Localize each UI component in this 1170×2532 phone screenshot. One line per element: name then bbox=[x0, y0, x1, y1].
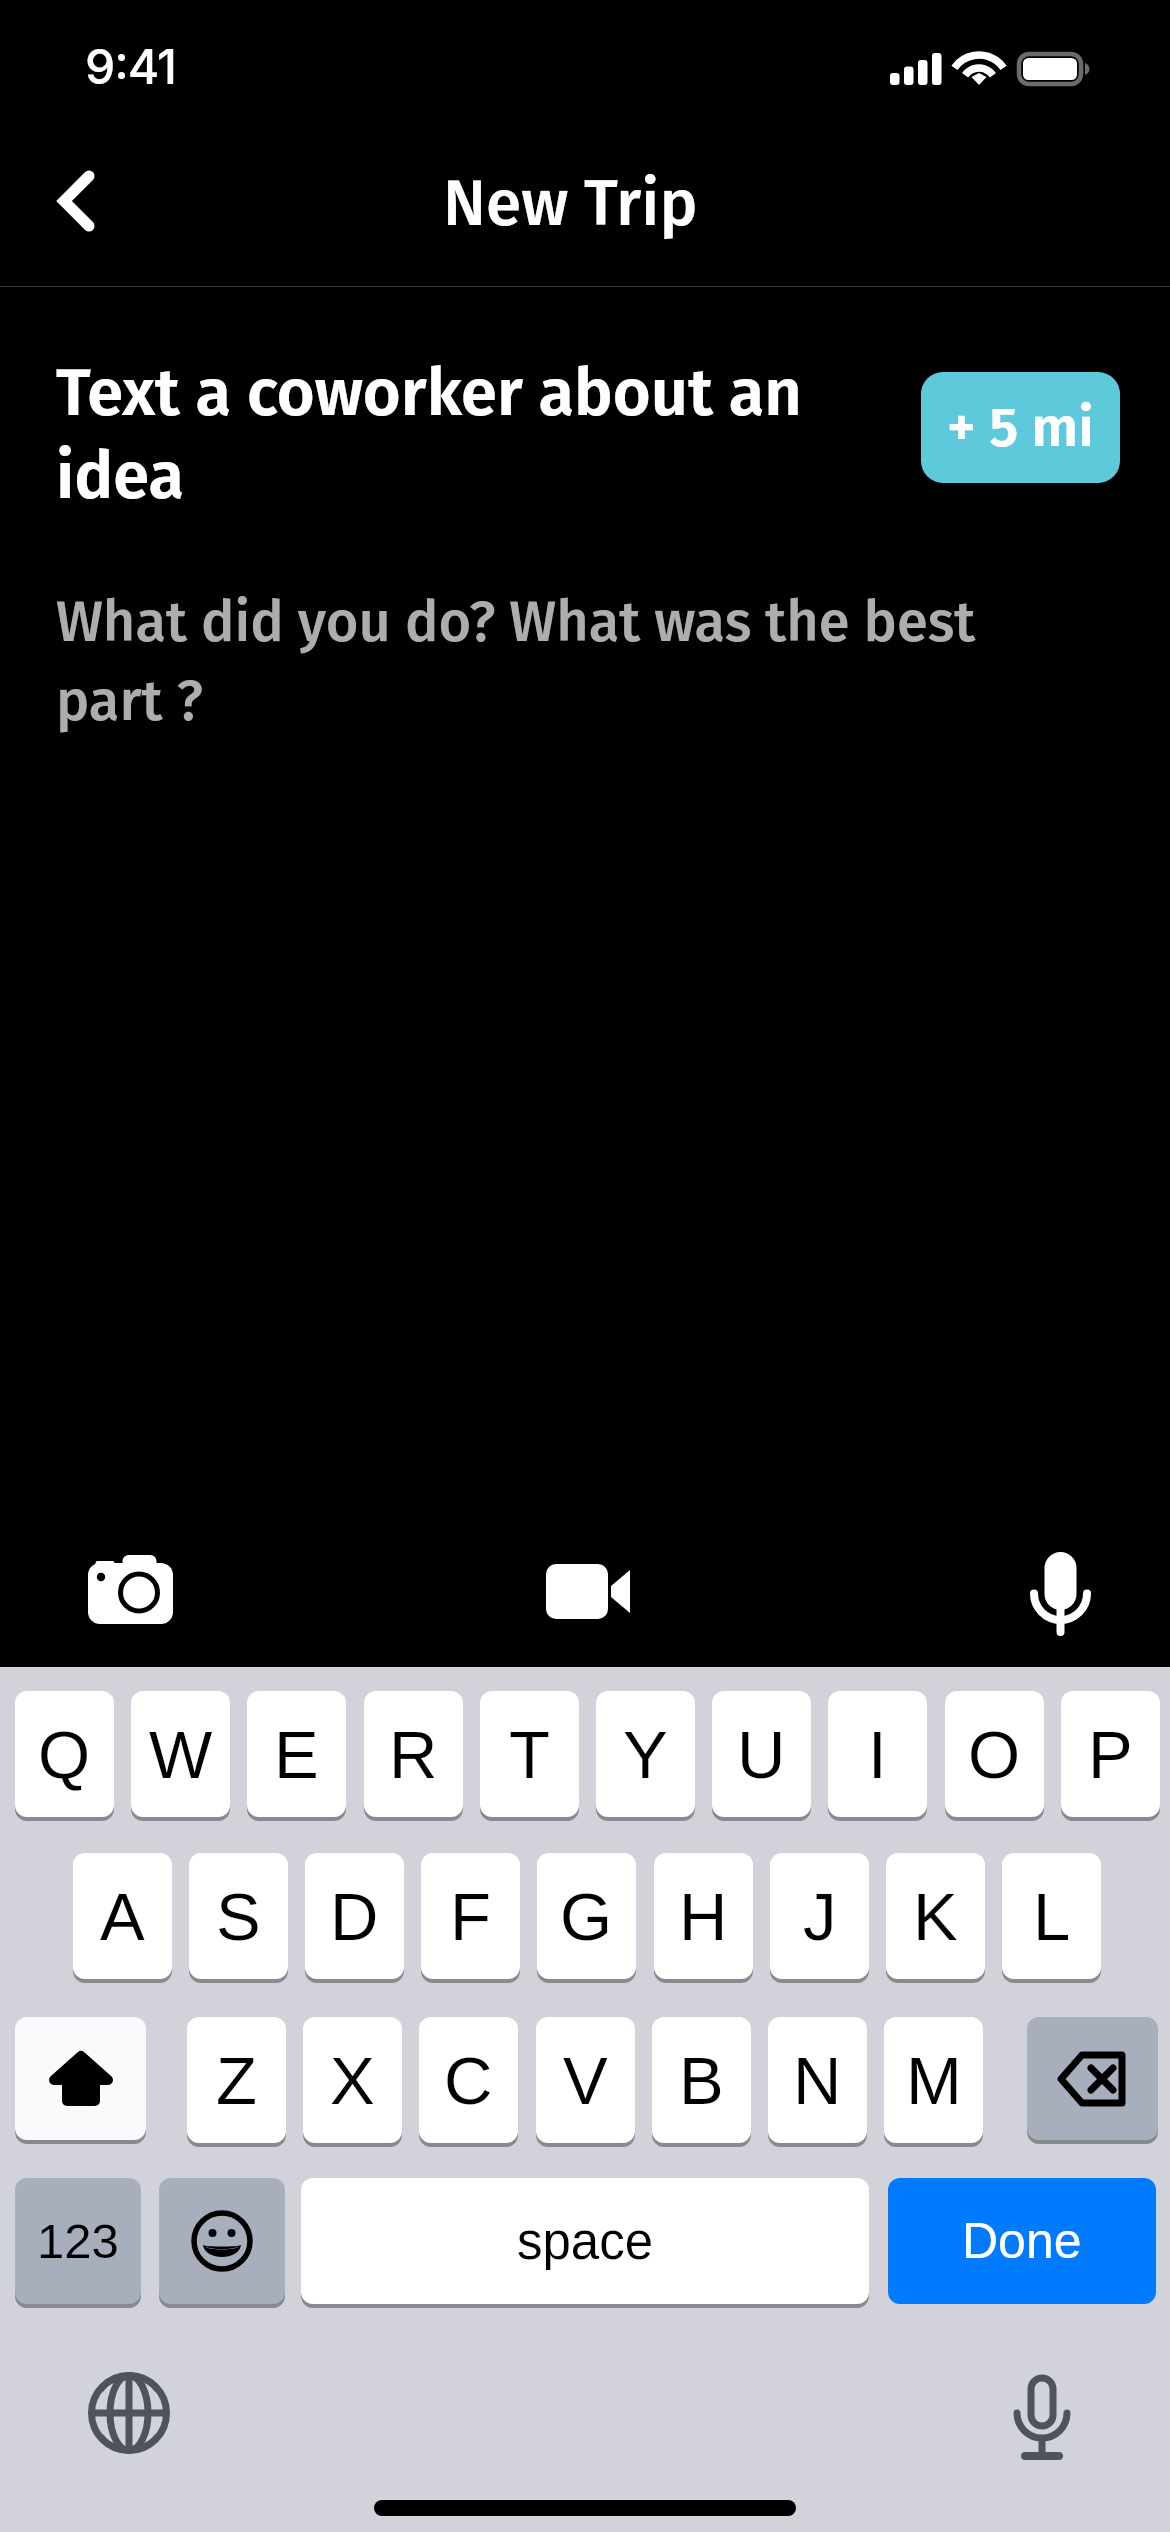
button[interactable]: Change keyboard bbox=[69, 2353, 189, 2473]
staticText: A bbox=[100, 1879, 145, 1954]
staticText: E bbox=[274, 1717, 319, 1792]
button[interactable] bbox=[15, 2017, 146, 2140]
button[interactable]: G bbox=[537, 1853, 636, 1979]
button[interactable] bbox=[1027, 2017, 1158, 2140]
button[interactable]: Done bbox=[888, 2178, 1156, 2304]
staticText: U bbox=[737, 1717, 786, 1792]
staticText: N bbox=[793, 2043, 842, 2118]
button[interactable]: P bbox=[1061, 1691, 1160, 1817]
button[interactable]: L bbox=[1002, 1853, 1101, 1979]
button[interactable]: + 5 mi bbox=[921, 372, 1120, 483]
staticText: M bbox=[906, 2043, 962, 2118]
button[interactable]: D bbox=[305, 1853, 404, 1979]
button[interactable]: A bbox=[73, 1853, 172, 1979]
staticText: New Trip bbox=[443, 165, 698, 242]
button[interactable]: V bbox=[536, 2017, 635, 2143]
button[interactable]: I bbox=[828, 1691, 927, 1817]
staticText: C bbox=[444, 2043, 493, 2118]
button[interactable]: 123 bbox=[15, 2178, 141, 2304]
staticText: 9:41 bbox=[85, 37, 176, 95]
button[interactable]: Q bbox=[15, 1691, 114, 1817]
button[interactable]: U bbox=[712, 1691, 811, 1817]
staticText: I bbox=[868, 1717, 887, 1792]
staticText: Z bbox=[216, 2043, 257, 2118]
button[interactable]: F bbox=[421, 1853, 520, 1979]
staticText: W bbox=[149, 1717, 213, 1792]
staticText: D bbox=[330, 1879, 379, 1954]
button[interactable]: X bbox=[303, 2017, 402, 2143]
staticText: 123 bbox=[37, 2214, 119, 2269]
button[interactable]: space bbox=[301, 2178, 869, 2304]
button[interactable]: M bbox=[884, 2017, 983, 2143]
button[interactable]: T bbox=[480, 1691, 579, 1817]
button[interactable]: K bbox=[886, 1853, 985, 1979]
staticText: O bbox=[968, 1717, 1021, 1792]
staticText: G bbox=[560, 1879, 613, 1954]
staticText: F bbox=[450, 1879, 491, 1954]
staticText: P bbox=[1088, 1717, 1133, 1792]
staticText: What did you do? What was the best part … bbox=[56, 589, 1016, 735]
button[interactable]: R bbox=[364, 1691, 463, 1817]
button[interactable]: E bbox=[247, 1691, 346, 1817]
staticText: S bbox=[216, 1879, 261, 1954]
button[interactable]: Video bbox=[526, 1544, 666, 1684]
button[interactable]: Z bbox=[187, 2017, 286, 2143]
staticText: space bbox=[517, 2213, 654, 2270]
staticText: H bbox=[679, 1879, 728, 1954]
staticText: V bbox=[563, 2043, 608, 2118]
button[interactable]: S bbox=[189, 1853, 288, 1979]
staticText: + 5 mi bbox=[947, 395, 1094, 461]
button[interactable]: J bbox=[770, 1853, 869, 1979]
button[interactable]: Y bbox=[596, 1691, 695, 1817]
staticText: K bbox=[913, 1879, 958, 1954]
button[interactable]: Dictate bbox=[982, 2360, 1102, 2480]
staticText: B bbox=[679, 2043, 724, 2118]
staticText: T bbox=[509, 1717, 550, 1792]
staticText: L bbox=[1033, 1879, 1071, 1954]
button[interactable]: Microphone bbox=[996, 1537, 1136, 1677]
button[interactable]: H bbox=[654, 1853, 753, 1979]
staticText: Q bbox=[38, 1717, 91, 1792]
button[interactable]: O bbox=[945, 1691, 1044, 1817]
button[interactable]: B bbox=[652, 2017, 751, 2143]
staticText: Y bbox=[623, 1717, 668, 1792]
staticText: Done bbox=[962, 2213, 1082, 2269]
button[interactable]: N bbox=[768, 2017, 867, 2143]
button[interactable]: C bbox=[419, 2017, 518, 2143]
staticText: J bbox=[803, 1879, 837, 1954]
staticText: Text a coworker about an idea bbox=[56, 354, 866, 515]
staticText: X bbox=[330, 2043, 375, 2118]
button[interactable]: Back bbox=[9, 131, 149, 271]
staticText: R bbox=[389, 1717, 438, 1792]
button[interactable] bbox=[159, 2178, 285, 2304]
button[interactable]: Camera bbox=[68, 1535, 208, 1675]
button[interactable]: W bbox=[131, 1691, 230, 1817]
